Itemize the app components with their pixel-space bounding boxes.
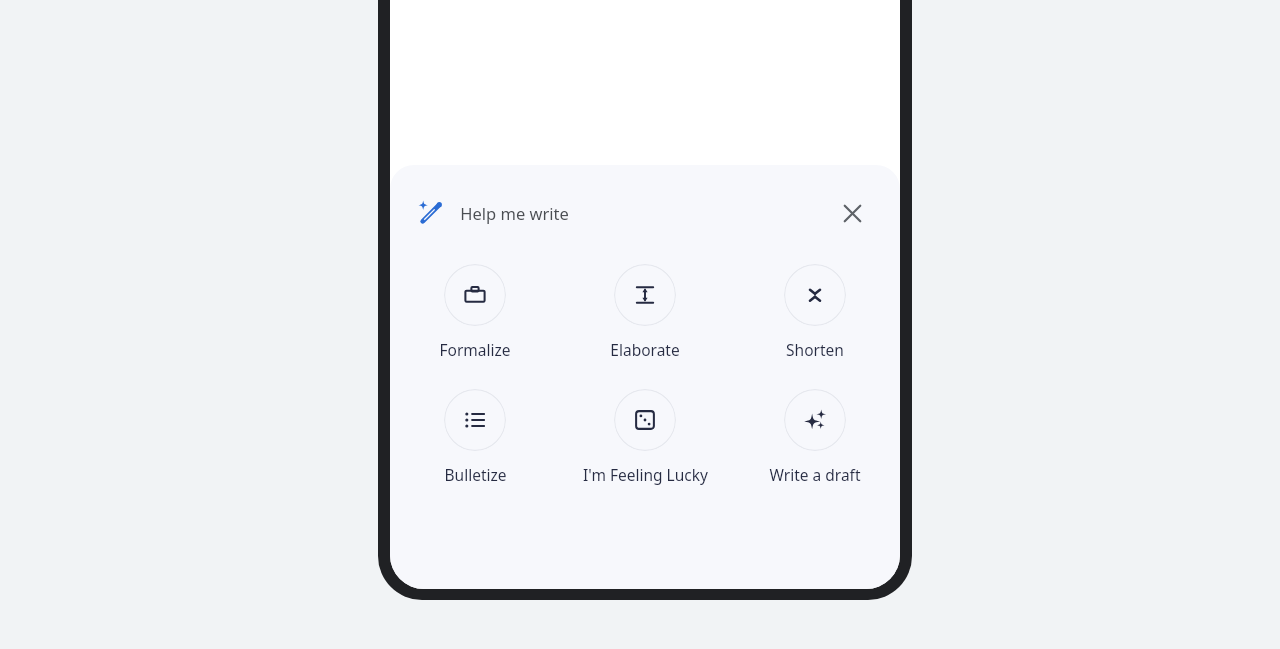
staticText: Bulletize <box>444 464 507 485</box>
button[interactable]: Close <box>830 191 874 235</box>
other: Help me write <box>416 198 446 228</box>
button[interactable]: Bulletize <box>390 389 560 485</box>
button[interactable]: Formalize <box>390 264 560 360</box>
button[interactable]: Shorten <box>730 264 900 360</box>
button[interactable]: Elaborate <box>560 264 730 360</box>
staticText: Help me write <box>460 202 569 224</box>
button[interactable]: I'm Feeling Lucky <box>560 389 730 485</box>
staticText: I'm Feeling Lucky <box>583 464 708 485</box>
staticText: Shorten <box>786 339 844 360</box>
staticText: Formalize <box>439 339 511 360</box>
staticText: Elaborate <box>610 339 680 360</box>
button[interactable]: Write a draft <box>730 389 900 485</box>
staticText: Write a draft <box>769 464 861 485</box>
